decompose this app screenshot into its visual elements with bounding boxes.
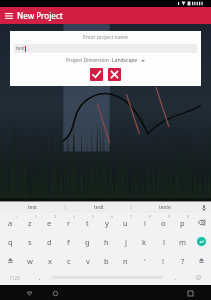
staticText: p: [180, 218, 185, 228]
staticText: b: [104, 256, 109, 266]
staticText: x: [48, 256, 52, 266]
staticText: i: [144, 218, 146, 228]
staticText: ': [144, 256, 146, 266]
button[interactable]: g: [78, 232, 97, 251]
button[interactable]: Emoji: [185, 270, 211, 285]
staticText: test: [16, 45, 25, 52]
staticText: Landscape: [112, 57, 138, 64]
button[interactable]: b: [97, 251, 116, 270]
staticText: u: [123, 218, 128, 228]
staticText: o: [161, 218, 166, 228]
staticText: w: [27, 256, 33, 266]
button[interactable]: h: [97, 232, 116, 251]
staticText: f: [67, 237, 70, 247]
button[interactable]: Comma: [30, 270, 49, 285]
button[interactable]: 0: [173, 213, 192, 232]
button[interactable]: c: [59, 251, 78, 270]
button[interactable]: x: [40, 251, 59, 270]
button[interactable]: Backspace: [192, 213, 211, 232]
staticText: 0: [187, 214, 190, 219]
staticText: q: [8, 237, 13, 247]
button[interactable]: d: [40, 232, 59, 251]
button[interactable]: m: [173, 232, 192, 251]
button[interactable]: k: [135, 232, 154, 251]
staticText: d: [47, 237, 52, 247]
staticText: v: [86, 256, 90, 266]
staticText: test: [28, 204, 37, 211]
staticText: !: [162, 256, 165, 266]
staticText: c: [67, 256, 71, 266]
button[interactable]: 1: [0, 213, 20, 232]
button[interactable]: !: [154, 251, 173, 270]
button[interactable]: v: [78, 251, 97, 270]
button[interactable]: 4: [59, 213, 78, 232]
staticText: l: [163, 237, 165, 247]
button[interactable]: j: [116, 232, 135, 251]
staticText: 2: [35, 214, 38, 219]
staticText: Project Dimension: [66, 57, 109, 64]
staticText: 3: [54, 214, 57, 219]
button[interactable]: q: [0, 232, 20, 251]
staticText: 5: [92, 214, 95, 219]
staticText: g: [85, 237, 90, 247]
button[interactable]: Project Dimension: [64, 56, 147, 65]
button[interactable]: f: [59, 232, 78, 251]
staticText: tedt: [94, 204, 104, 211]
button[interactable]: Confirm: [90, 68, 103, 81]
staticText: s: [28, 237, 32, 247]
button[interactable]: Space: [49, 270, 166, 285]
button[interactable]: Shift: [192, 251, 211, 270]
staticText: ?: [181, 256, 185, 266]
staticText: .: [175, 274, 177, 282]
button[interactable]: n: [116, 251, 135, 270]
staticText: 6: [111, 214, 114, 219]
button[interactable]: Enter: [192, 232, 211, 251]
button[interactable]: Voice input: [197, 202, 211, 213]
staticText: 9: [168, 214, 171, 219]
staticText: a: [8, 218, 13, 228]
staticText: 7: [130, 214, 133, 219]
button[interactable]: ?123: [0, 270, 30, 285]
staticText: 8: [149, 214, 152, 219]
button[interactable]: 9: [154, 213, 173, 232]
staticText: j: [125, 237, 127, 247]
button[interactable]: w: [20, 251, 40, 270]
staticText: z: [28, 218, 32, 228]
staticText: m: [179, 237, 187, 247]
staticText: ,: [39, 274, 41, 282]
button[interactable]: 3: [40, 213, 59, 232]
staticText: y: [105, 218, 109, 228]
button[interactable]: 5: [78, 213, 97, 232]
button[interactable]: 6: [97, 213, 116, 232]
staticText: n: [123, 256, 128, 266]
button[interactable]: Home: [48, 286, 62, 300]
button[interactable]: ?: [173, 251, 192, 270]
button[interactable]: 8: [135, 213, 154, 232]
button[interactable]: test: [14, 44, 197, 53]
button[interactable]: Cancel: [108, 68, 121, 81]
staticText: h: [104, 237, 109, 247]
button[interactable]: Recent apps: [183, 286, 197, 300]
button[interactable]: ': [135, 251, 154, 270]
staticText: r: [67, 218, 71, 228]
button[interactable]: test: [0, 202, 65, 213]
button[interactable]: s: [20, 232, 40, 251]
button[interactable]: 2: [20, 213, 40, 232]
staticText: 1: [15, 214, 18, 219]
staticText: e: [47, 218, 52, 228]
button[interactable]: l: [154, 232, 173, 251]
staticText: texte: [159, 204, 171, 211]
staticText: k: [142, 237, 147, 247]
staticText: 4: [73, 214, 76, 219]
button[interactable]: texte: [132, 202, 197, 213]
button[interactable]: Shift: [0, 251, 20, 270]
staticText: Enter project name: [83, 34, 128, 41]
button[interactable]: tedt: [66, 202, 131, 213]
staticText: ?123: [10, 275, 20, 281]
staticText: New Project: [17, 10, 63, 21]
button[interactable]: Back: [22, 286, 36, 300]
button[interactable]: Open navigation drawer: [0, 7, 17, 24]
staticText: t: [86, 218, 89, 228]
button[interactable]: 7: [116, 213, 135, 232]
